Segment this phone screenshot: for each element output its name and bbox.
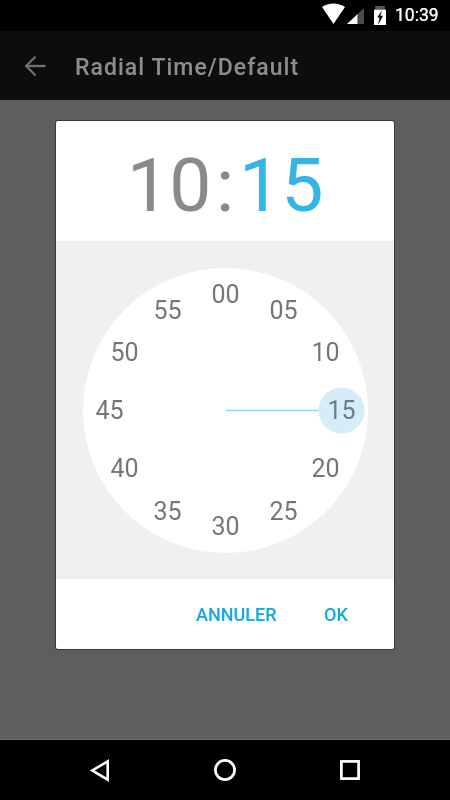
button[interactable]: 30 <box>203 504 247 548</box>
button[interactable]: 15 <box>319 388 363 432</box>
staticText: 00 <box>211 280 240 309</box>
button[interactable]: ANNULER <box>188 594 285 635</box>
staticText: 25 <box>269 497 298 526</box>
button[interactable]: 25 <box>261 489 305 533</box>
button[interactable]: Back <box>76 746 124 794</box>
button[interactable]: Recent apps <box>326 746 374 794</box>
button[interactable]: Navigate up <box>11 42 59 90</box>
staticText: 20 <box>311 454 340 483</box>
button[interactable]: 15 <box>239 141 324 229</box>
button[interactable]: 35 <box>145 489 189 533</box>
staticText: 40 <box>110 454 139 483</box>
button[interactable]: 20 <box>303 446 347 490</box>
button[interactable]: 00 <box>203 272 247 316</box>
button[interactable]: 10 <box>303 330 347 374</box>
staticText: ANNULER <box>196 604 277 625</box>
button[interactable]: 10 <box>127 141 212 229</box>
button[interactable]: Home <box>201 746 249 794</box>
button[interactable]: 55 <box>145 288 189 332</box>
button[interactable]: OK <box>316 594 356 635</box>
button[interactable]: 50 <box>102 330 146 374</box>
button[interactable]: 05 <box>261 288 305 332</box>
button[interactable]: 40 <box>102 446 146 490</box>
staticText: 05 <box>269 296 298 325</box>
staticText: : <box>216 141 235 229</box>
staticText: 10:39 <box>395 5 439 26</box>
staticText: 45 <box>95 396 124 425</box>
button[interactable]: 45 <box>87 388 131 432</box>
staticText: 10 <box>311 338 340 367</box>
staticText: OK <box>324 604 348 625</box>
staticText: Radial Time/Default <box>75 54 300 81</box>
staticText: 30 <box>211 512 240 541</box>
staticText: 55 <box>153 296 182 325</box>
staticText: 50 <box>110 338 139 367</box>
staticText: 15 <box>327 396 356 425</box>
staticText: 35 <box>153 497 182 526</box>
